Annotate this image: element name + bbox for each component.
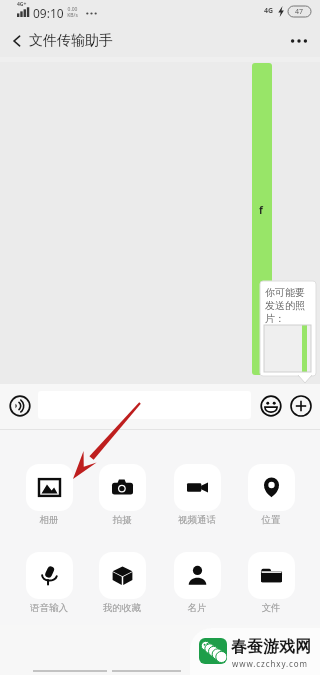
staticText: 47 (295, 7, 304, 17)
staticText: 4G (264, 6, 274, 16)
staticText: 0.00 KB/s (67, 6, 78, 19)
staticText: www.czchxy.com (232, 658, 308, 669)
staticText: 位置 (239, 514, 303, 526)
button[interactable]: 语音输入 (17, 552, 81, 614)
button[interactable]: 位置 (239, 464, 303, 526)
button[interactable]: More options (287, 29, 311, 53)
button[interactable]: 视频通话 (165, 464, 229, 526)
staticText: f (259, 203, 263, 217)
staticText: 文件传输助手 (29, 32, 113, 50)
button[interactable]: 名片 (165, 552, 229, 614)
staticText: 名片 (165, 602, 229, 614)
button[interactable]: Emoji (258, 393, 283, 418)
staticText: 相册 (17, 514, 81, 526)
staticText: 09:10 (33, 5, 64, 21)
staticText: 拍摄 (90, 514, 154, 526)
button[interactable]: 我的收藏 (90, 552, 154, 614)
button[interactable]: Back (6, 30, 28, 52)
button[interactable]: 拍摄 (90, 464, 154, 526)
button[interactable] (38, 391, 251, 419)
staticText: 春蚕游戏网 (231, 637, 311, 657)
staticText: 语音输入 (17, 602, 81, 614)
staticText: 文件 (239, 602, 303, 614)
button[interactable]: 相册 (17, 464, 81, 526)
staticText: 视频通话 (165, 514, 229, 526)
button[interactable]: 文件 (239, 552, 303, 614)
button[interactable]: More functions (288, 393, 313, 418)
staticText: 你可能要发送的照片： (265, 286, 309, 325)
button[interactable]: Voice message (7, 393, 33, 419)
staticText: 我的收藏 (90, 602, 154, 614)
staticText: 4G+ (17, 1, 27, 8)
